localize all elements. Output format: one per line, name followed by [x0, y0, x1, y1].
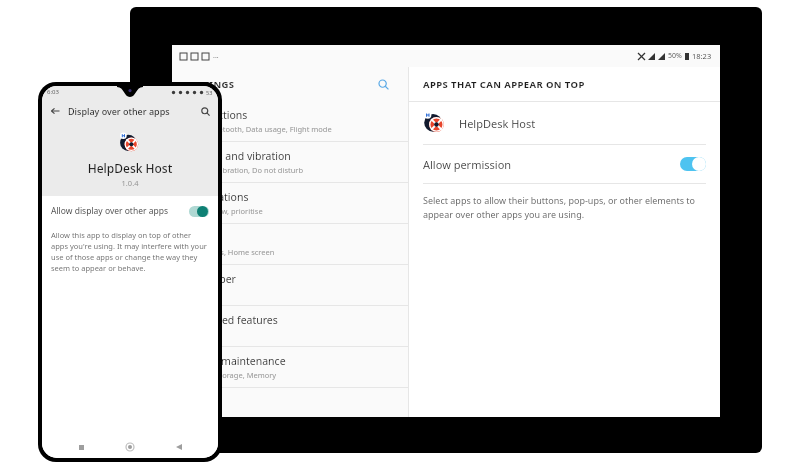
button[interactable]: Search settings	[372, 73, 394, 95]
button[interactable]: Notifications	[172, 183, 408, 224]
button[interactable]: Recents	[71, 437, 91, 457]
button[interactable]: Wallpaper	[172, 265, 408, 306]
staticText: Notifications	[186, 190, 249, 204]
button[interactable]: HelpDesk Host	[409, 102, 720, 144]
staticText: Brightness, Home screen	[186, 247, 275, 257]
staticText: Display over other apps	[68, 105, 170, 117]
staticText: 18:23	[692, 51, 712, 61]
staticText: ...	[213, 51, 219, 61]
staticText: HelpDesk Host	[42, 160, 218, 176]
staticText: Allow display over other apps	[51, 205, 168, 217]
staticText: 53	[206, 89, 213, 96]
button[interactable]: Navigate up	[42, 98, 68, 124]
staticText: HelpDesk Host	[459, 116, 536, 131]
staticText: 1.0.4	[42, 178, 218, 188]
staticText: Wallpaper	[186, 272, 236, 286]
staticText: 6:03	[47, 88, 59, 96]
staticText: Sounds, Vibration, Do not disturb	[186, 165, 304, 175]
button[interactable]: Allow display over other apps	[42, 196, 218, 226]
button[interactable]: Sounds and vibration	[172, 142, 408, 183]
staticText: Allow permission	[423, 157, 512, 172]
button[interactable]: Connections	[172, 101, 408, 142]
staticText: Advanced features	[186, 313, 278, 327]
staticText: Display	[186, 231, 222, 245]
staticText: APPS THAT CAN APPEAR ON TOP	[423, 78, 585, 91]
staticText: 50%	[668, 51, 682, 61]
button[interactable]: Display	[172, 224, 408, 265]
staticText: SETTINGS	[186, 78, 235, 91]
staticText: Battery, Storage, Memory	[186, 370, 277, 380]
button[interactable]: Advanced features	[172, 306, 408, 347]
staticText: Block, allow, prioritise	[186, 206, 263, 216]
button[interactable]: Allow display over other apps toggle	[189, 206, 209, 217]
staticText: Device maintenance	[186, 354, 286, 368]
staticText: Allow this app to display on top of othe…	[51, 230, 207, 273]
staticText: Select apps to allow their buttons, pop-…	[423, 194, 702, 221]
button[interactable]: Back	[169, 437, 189, 457]
button[interactable]: Apps	[172, 388, 408, 417]
button[interactable]: Search	[192, 98, 218, 124]
staticText: Wi-Fi, Bluetooth, Data usage, Flight mod…	[186, 124, 332, 134]
button[interactable]: Allow permission toggle	[680, 157, 706, 171]
button[interactable]: Allow permission	[409, 145, 720, 183]
button[interactable]: Home	[120, 437, 140, 457]
staticText: Wallpaper	[186, 288, 222, 298]
staticText: Connections	[186, 108, 248, 122]
staticText: Sounds and vibration	[186, 149, 291, 163]
button[interactable]: Device maintenance	[172, 347, 408, 388]
